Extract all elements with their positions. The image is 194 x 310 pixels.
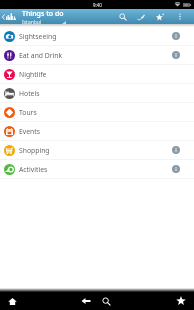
button[interactable]: Search bbox=[114, 9, 132, 24]
button[interactable]: Activities bbox=[0, 160, 194, 178]
staticText: Sightseeing bbox=[19, 32, 57, 41]
staticText: Shopping bbox=[19, 146, 50, 155]
staticText: Hotels bbox=[19, 89, 40, 98]
button[interactable]: Back bbox=[76, 292, 96, 310]
button[interactable]: Sightseeing bbox=[0, 27, 194, 45]
button[interactable]: More options bbox=[171, 9, 189, 24]
button[interactable]: Info bbox=[167, 141, 185, 159]
button[interactable]: Up bbox=[0, 9, 18, 24]
button[interactable]: Info bbox=[167, 160, 185, 178]
button[interactable]: Bookmarks bbox=[171, 292, 191, 310]
button[interactable]: Hotels bbox=[0, 84, 194, 102]
button[interactable]: Home bbox=[2, 292, 22, 310]
staticText: Nightlife bbox=[19, 70, 47, 79]
other: Up bbox=[2, 14, 5, 20]
staticText: 9:40 bbox=[93, 2, 102, 8]
staticText: Eat and Drink bbox=[19, 51, 63, 60]
button[interactable]: Eat and Drink bbox=[0, 46, 194, 64]
button[interactable]: Events bbox=[0, 122, 194, 140]
staticText: Activities bbox=[19, 165, 48, 174]
staticText: Events bbox=[19, 127, 40, 136]
staticText: Tours bbox=[19, 108, 37, 117]
button[interactable]: Nightlife bbox=[0, 65, 194, 83]
button[interactable]: Tours bbox=[0, 103, 194, 121]
staticText: Istanbul bbox=[22, 19, 42, 24]
button[interactable]: Info bbox=[167, 46, 185, 64]
staticText: Things to do bbox=[22, 9, 64, 19]
button[interactable]: Search bbox=[96, 292, 116, 310]
button[interactable]: Edit bbox=[132, 9, 150, 24]
button[interactable]: Info bbox=[167, 27, 185, 45]
button[interactable]: Shopping bbox=[0, 141, 194, 159]
button[interactable]: Favorites bbox=[151, 9, 169, 24]
